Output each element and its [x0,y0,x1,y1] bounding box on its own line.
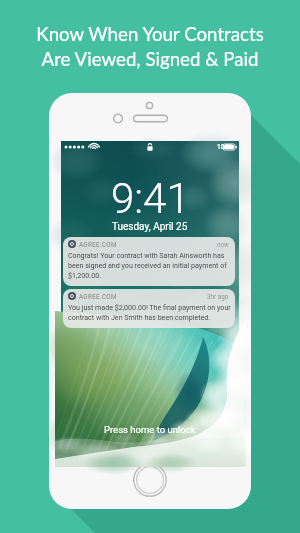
button[interactable]: AGREE.COM [63,289,235,328]
staticText: 9:41 [111,174,190,223]
staticText: Know When Your Contracts Are Viewed, Sig… [0,23,300,70]
staticText: Tuesday, April 25 [112,221,188,233]
staticText: AGREE.COM [79,241,117,248]
staticText: You just made $2,000.00! The final payme… [68,303,234,321]
button[interactable]: AGREE.COM [63,237,235,286]
staticText: AGREE.COM [79,293,117,300]
staticText: Press home to unlock [104,424,196,435]
staticText: 100% [217,143,233,151]
staticText: 3hr ago [207,293,229,300]
staticText: Congrats! Your contract with Sarah Ainsw… [68,251,234,279]
staticText: now [217,241,229,248]
